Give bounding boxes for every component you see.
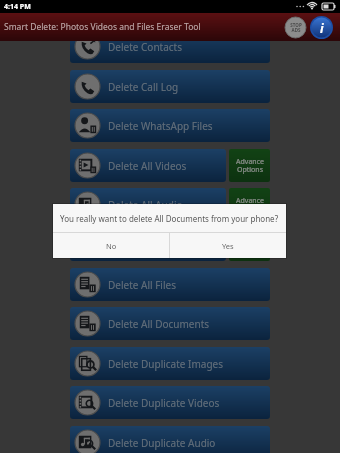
staticText: Delete All Audio — [108, 198, 183, 212]
staticText: STOP ADS — [290, 22, 302, 33]
staticText: Advance Options — [236, 196, 264, 213]
staticText: You really want to delete All Documents … — [60, 213, 279, 224]
staticText: Delete All Documents — [108, 317, 210, 331]
staticText: Delete All Videos — [108, 159, 187, 173]
staticText: Yes — [222, 241, 234, 251]
button[interactable]: Advance Options — [229, 149, 270, 182]
button[interactable]: Yes — [170, 233, 286, 258]
staticText: i — [320, 20, 324, 36]
button[interactable]: Stop Ads — [285, 17, 306, 38]
button[interactable]: Delete Duplicate Images — [70, 347, 270, 380]
staticText: Delete All Images — [108, 238, 191, 252]
staticText: Delete Duplicate Audio — [108, 436, 216, 450]
button[interactable]: Delete Duplicate Videos — [70, 386, 270, 419]
staticText: Delete Call Log — [108, 80, 179, 94]
button[interactable]: Info — [310, 16, 333, 39]
staticText: Smart Delete: Photos Videos and Files Er… — [4, 21, 201, 33]
button[interactable]: Delete All Images — [70, 228, 226, 261]
button[interactable]: Delete All Videos — [70, 149, 226, 182]
staticText: 4:14 PM — [4, 2, 31, 12]
button[interactable]: Delete Call Log — [70, 70, 270, 103]
staticText: Advance Options — [236, 157, 264, 174]
button[interactable]: Delete All Files — [70, 268, 270, 301]
staticText: Delete Duplicate Images — [108, 357, 223, 371]
button[interactable]: Delete All Documents — [70, 307, 270, 340]
staticText: Delete Duplicate Videos — [108, 396, 220, 410]
button[interactable]: Delete All Audio — [70, 188, 226, 221]
staticText: Delete WhatsApp Files — [108, 119, 213, 133]
staticText: Delete All Files — [108, 278, 176, 292]
staticText: Delete Contacts — [108, 40, 182, 54]
button[interactable]: Delete Contacts — [70, 30, 270, 63]
button[interactable]: Delete Duplicate Audio — [70, 426, 270, 453]
button[interactable]: No — [53, 233, 169, 258]
button[interactable]: Delete WhatsApp Files — [70, 109, 270, 142]
button[interactable]: Advance Options — [229, 188, 270, 221]
button[interactable]: Advance Options — [229, 228, 270, 261]
staticText: No — [106, 241, 117, 251]
